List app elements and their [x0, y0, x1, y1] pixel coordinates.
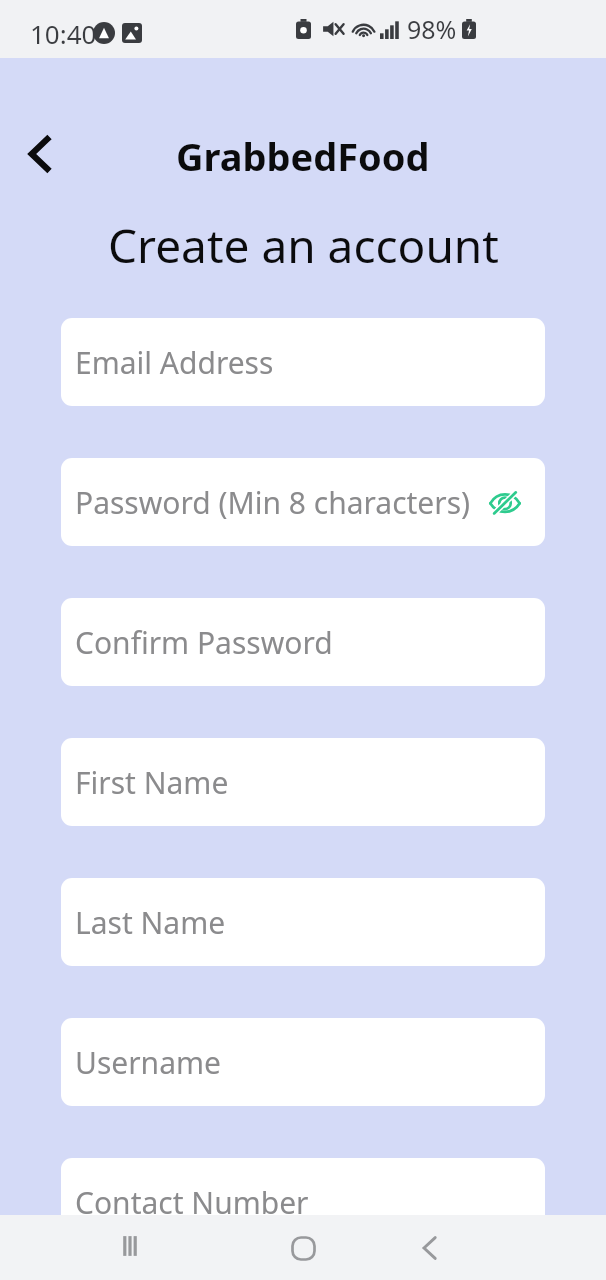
button[interactable]: Email Address — [61, 318, 545, 406]
button[interactable]: Username — [61, 1018, 545, 1106]
button[interactable]: Confirm Password — [61, 598, 545, 686]
staticText: Contact Number — [75, 1182, 309, 1223]
staticText: Confirm Password — [75, 622, 333, 663]
button[interactable]: Back — [399, 1217, 461, 1279]
button[interactable]: First Name — [61, 738, 545, 826]
staticText: GrabbedFood — [176, 130, 430, 182]
button[interactable]: Back — [12, 126, 68, 182]
staticText: First Name — [75, 762, 229, 803]
staticText: Password (Min 8 characters) — [75, 482, 471, 523]
button[interactable]: Password (Min 8 characters) — [61, 458, 545, 546]
staticText: Email Address — [75, 342, 274, 383]
staticText: Username — [75, 1042, 221, 1083]
staticText: Last Name — [75, 902, 226, 943]
button[interactable]: Recent apps — [99, 1215, 161, 1277]
button[interactable]: Last Name — [61, 878, 545, 966]
button[interactable]: Show password — [483, 480, 527, 524]
button[interactable]: Contact Number — [61, 1158, 545, 1246]
button[interactable]: Home — [272, 1217, 334, 1279]
staticText: 10:40 — [30, 16, 97, 51]
staticText: Create an account — [108, 214, 499, 277]
staticText: 98% — [407, 12, 457, 46]
